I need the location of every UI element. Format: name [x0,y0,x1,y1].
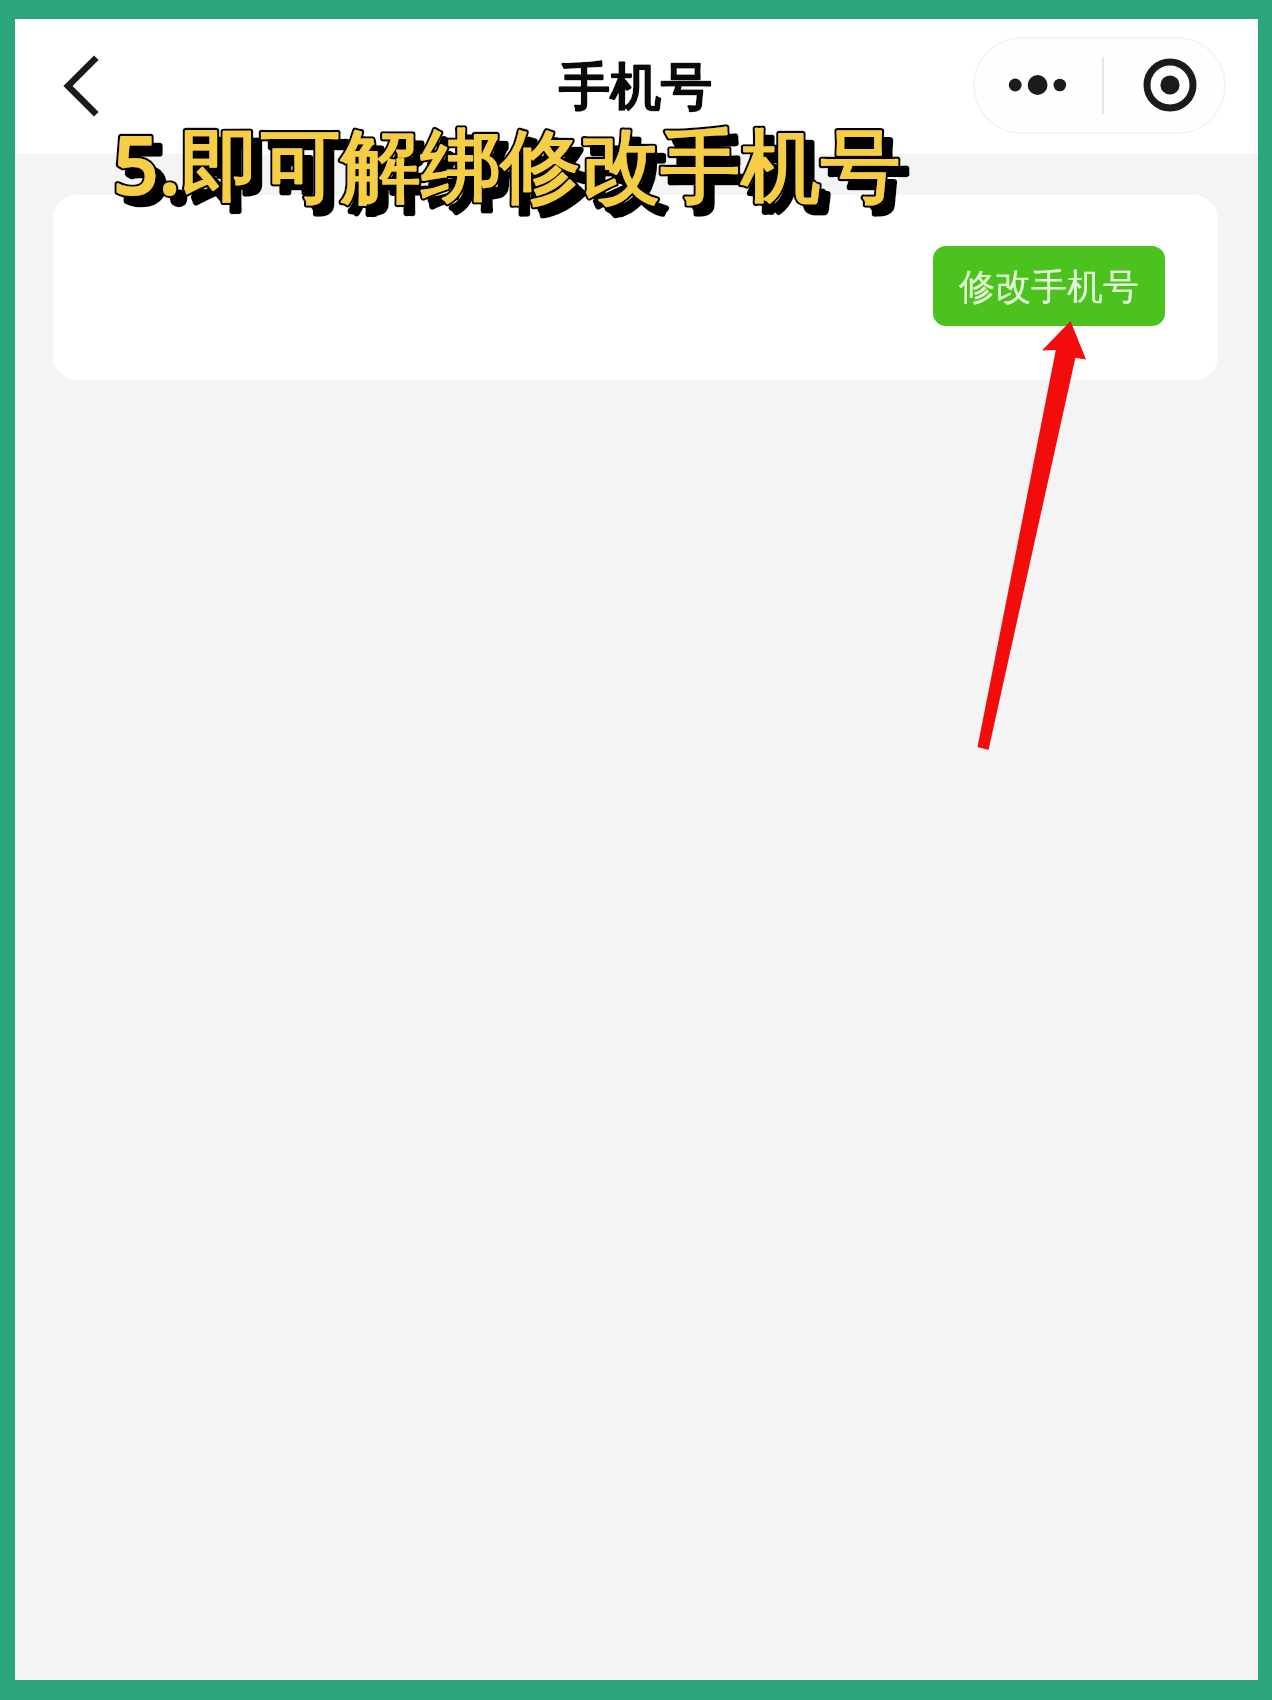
button[interactable]: More options and mini program menu [973,37,1226,134]
staticText: 5.即可解绑修改手机号 [113,108,901,217]
staticText: 修改手机号 [959,264,1139,309]
staticText: 手机号 [559,55,712,119]
staticText: 手机号 [559,55,712,119]
button[interactable]: Back [38,42,124,128]
staticText: 5.即可解绑修改手机号 [122,117,910,226]
button[interactable]: 修改手机号 [933,246,1165,326]
staticText: 5.即可解绑修改手机号 [122,117,910,226]
staticText: 5.即可解绑修改手机号 [113,108,901,217]
staticText: 5.即可解绑修改手机号 [113,108,901,217]
